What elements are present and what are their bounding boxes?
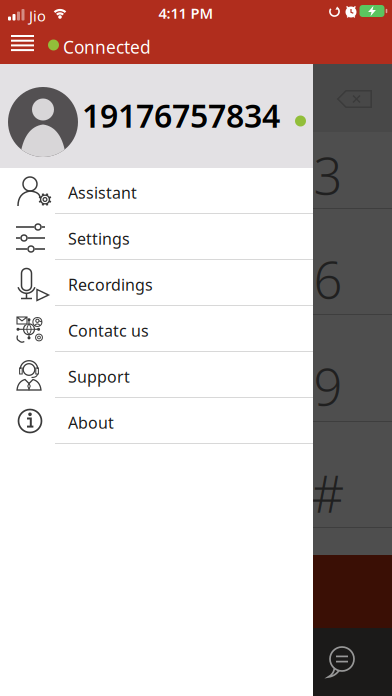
staticText: 3 <box>313 141 342 209</box>
button[interactable]: Menu <box>3 27 42 59</box>
staticText: Jio <box>29 6 46 25</box>
staticText: Contatc us <box>68 320 149 341</box>
staticText: Settings <box>68 228 130 249</box>
button[interactable]: Settings <box>0 214 313 260</box>
staticText: Connected <box>63 35 151 58</box>
staticText: # <box>311 459 344 527</box>
staticText: Recordings <box>68 274 153 295</box>
staticText: 4:11 PM <box>158 3 213 23</box>
staticText: 19176757834 <box>82 94 280 136</box>
staticText: About <box>68 412 114 433</box>
button[interactable]: Assistant <box>0 168 313 214</box>
staticText: 6 <box>313 245 342 313</box>
staticText: Support <box>68 366 130 387</box>
staticText: Assistant <box>68 182 137 203</box>
button[interactable]: Delete <box>337 90 372 108</box>
button[interactable]: Chat <box>326 646 358 678</box>
staticText: 9 <box>313 352 342 420</box>
button[interactable]: Support <box>0 352 313 398</box>
button[interactable]: About <box>0 398 313 444</box>
button[interactable]: Contatc us <box>0 306 313 352</box>
button[interactable]: Recordings <box>0 260 313 306</box>
